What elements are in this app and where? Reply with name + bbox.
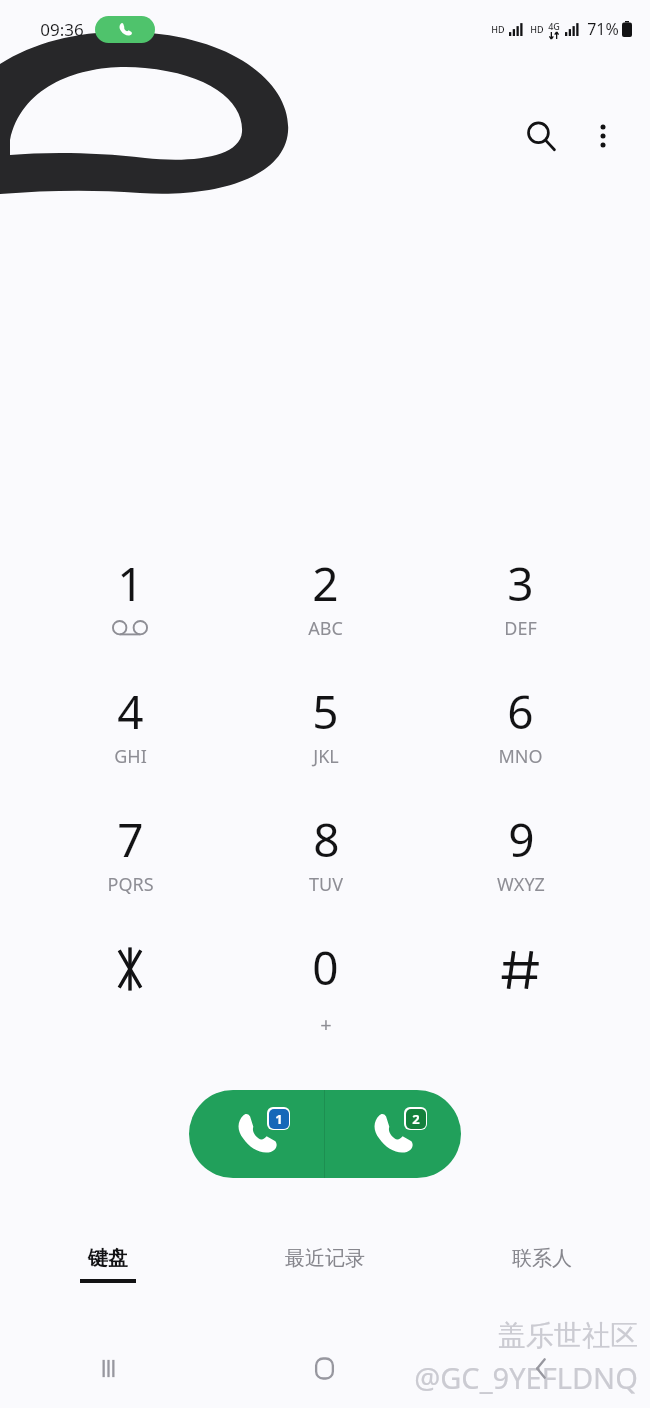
staticText: 0 xyxy=(312,936,339,999)
staticText: @GC_9YEFLDNQ xyxy=(414,1358,638,1397)
button[interactable]: More options xyxy=(574,107,632,165)
staticText: 2 xyxy=(312,552,339,615)
staticText: 5 xyxy=(312,680,339,743)
button[interactable]: 2 xyxy=(228,552,423,670)
staticText: 7 xyxy=(117,808,144,871)
staticText: HD xyxy=(491,23,505,35)
staticText: 键盘 xyxy=(88,1246,128,1271)
staticText: DEF xyxy=(504,616,537,641)
button[interactable] xyxy=(423,936,618,1054)
staticText: 6 xyxy=(507,680,534,743)
staticText: 8 xyxy=(313,808,340,871)
button[interactable]: Call with SIM 2 xyxy=(325,1090,461,1178)
staticText: 09:36 xyxy=(40,18,84,41)
button[interactable]: 1 xyxy=(32,552,228,670)
staticText: TUV xyxy=(309,872,343,897)
staticText: 盖乐世社区 xyxy=(498,1318,638,1353)
staticText: ABC xyxy=(308,616,343,641)
button[interactable]: 5 xyxy=(228,680,423,798)
staticText: 9 xyxy=(508,808,535,871)
button[interactable]: 0 xyxy=(228,936,423,1054)
button[interactable]: 7 xyxy=(32,808,228,926)
staticText: 2 xyxy=(412,1110,420,1128)
staticText: 联系人 xyxy=(512,1246,572,1271)
button[interactable]: Back xyxy=(433,1338,650,1398)
staticText: 1 xyxy=(275,1110,283,1128)
button[interactable]: 联系人 xyxy=(433,1246,650,1318)
staticText: 1 xyxy=(117,552,144,615)
button[interactable]: 6 xyxy=(423,680,618,798)
staticText: 4G xyxy=(548,20,560,32)
staticText: HD xyxy=(530,23,544,35)
button[interactable]: 8 xyxy=(228,808,423,926)
button[interactable] xyxy=(32,936,228,1054)
button[interactable]: Call with SIM 1 xyxy=(189,1090,324,1178)
staticText: WXYZ xyxy=(497,872,545,897)
staticText: + xyxy=(320,1011,332,1038)
staticText: 4 xyxy=(117,680,144,743)
button[interactable]: Recents xyxy=(0,1338,216,1398)
staticText: JKL xyxy=(313,744,339,769)
staticText: 3 xyxy=(507,552,534,615)
button[interactable]: 3 xyxy=(423,552,618,670)
button[interactable]: 最近记录 xyxy=(216,1246,433,1318)
staticText: PQRS xyxy=(107,872,154,897)
staticText: 71% xyxy=(587,18,619,40)
staticText: GHI xyxy=(114,744,147,769)
button[interactable]: 4 xyxy=(32,680,228,798)
staticText: MNO xyxy=(498,744,543,769)
button[interactable]: 9 xyxy=(423,808,618,926)
button[interactable]: Home xyxy=(216,1338,433,1398)
button[interactable]: Search xyxy=(508,103,574,169)
staticText: 最近记录 xyxy=(285,1246,365,1271)
button[interactable]: 键盘 xyxy=(0,1246,216,1318)
